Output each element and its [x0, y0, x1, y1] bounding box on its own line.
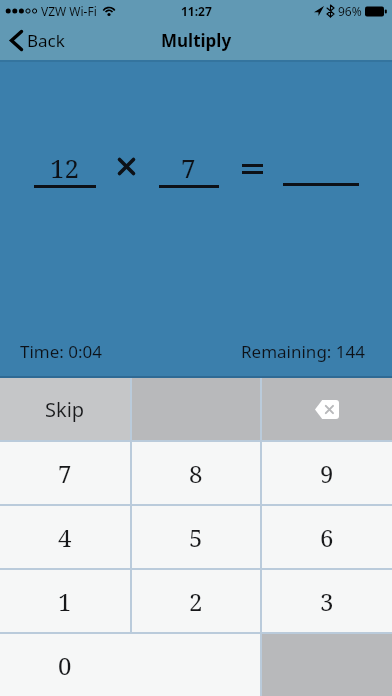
staticText: 0 — [58, 649, 72, 682]
button[interactable]: 2 — [132, 570, 260, 632]
button[interactable]: 8 — [132, 442, 260, 504]
button[interactable]: 7 — [0, 442, 130, 504]
button[interactable]: 3 — [262, 570, 392, 632]
button[interactable] — [262, 378, 392, 440]
button[interactable]: Back — [10, 29, 65, 52]
staticText: 1 — [58, 585, 72, 618]
staticText: 12 — [50, 150, 80, 180]
staticText: Remaining: 144 — [241, 340, 365, 363]
staticText: 7 — [58, 457, 72, 490]
staticText: 6 — [320, 521, 334, 554]
button[interactable]: Skip — [0, 378, 130, 440]
button[interactable]: 4 — [0, 506, 130, 568]
staticText: 8 — [189, 457, 203, 490]
staticText: 2 — [189, 585, 203, 618]
staticText: Skip — [45, 396, 85, 423]
button[interactable]: 6 — [262, 506, 392, 568]
staticText: 7 — [181, 150, 196, 180]
staticText: Time: 0:04 — [20, 340, 103, 363]
staticText: Back — [27, 29, 65, 52]
staticText: 9 — [320, 457, 334, 490]
button[interactable]: 0 — [0, 634, 260, 696]
staticText: VZW Wi-Fi — [41, 3, 97, 19]
button[interactable]: 5 — [132, 506, 260, 568]
staticText: Multiply — [161, 29, 232, 52]
staticText: 4 — [58, 521, 72, 554]
staticText: 5 — [189, 521, 203, 554]
staticText: 11:27 — [181, 3, 212, 19]
staticText: 3 — [320, 585, 334, 618]
button[interactable]: 9 — [262, 442, 392, 504]
staticText: 96% — [338, 3, 362, 19]
button[interactable]: 1 — [0, 570, 130, 632]
